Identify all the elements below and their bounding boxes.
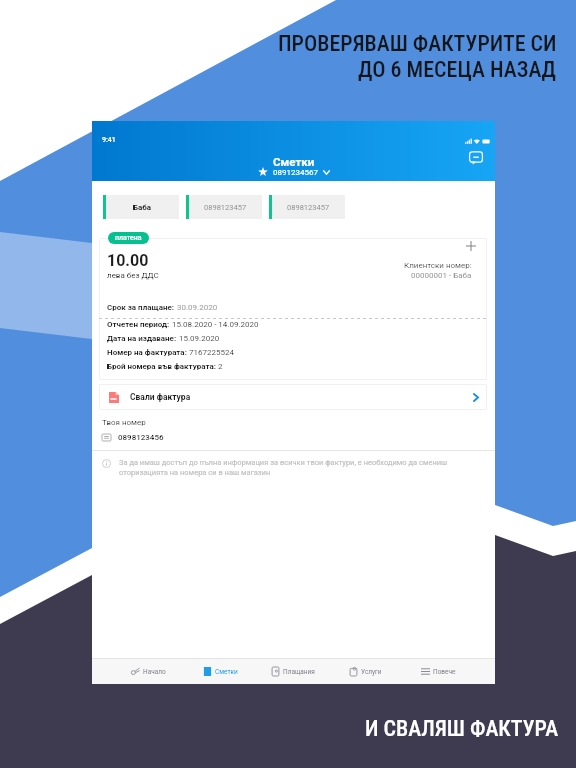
staticText: 15.09.2020: [179, 334, 220, 343]
staticText: Повече: [433, 668, 456, 676]
button[interactable]: платена: [108, 232, 149, 244]
button[interactable]: 0898123457: [186, 195, 262, 219]
staticText: И СВАЛЯШ ФАКТУРА: [365, 716, 559, 742]
staticText: Баба: [133, 203, 152, 212]
staticText: ПРОВЕРЯВАШ ФАКТУРИТЕ СИ: [278, 31, 557, 57]
staticText: ДО 6 МЕСЕЦА НАЗАД: [358, 57, 557, 83]
staticText: Срок за плащане:: [107, 303, 177, 312]
staticText: За да имаш достъп до пълна информация за…: [119, 458, 461, 477]
staticText: Брой номера във фактурата:: [107, 362, 218, 371]
staticText: Начало: [143, 668, 166, 676]
staticText: 0898123457: [287, 203, 330, 212]
staticText: 2: [218, 362, 223, 371]
staticText: Дата на издаване:: [107, 334, 179, 343]
staticText: 30.09.2020: [177, 303, 218, 312]
button[interactable]: Свали фактура: [99, 384, 487, 410]
staticText: 0898123456: [118, 433, 164, 442]
button[interactable]: Add: [463, 238, 479, 254]
staticText: 00000001 - Баба: [411, 271, 472, 280]
button[interactable]: Сметки: [184, 659, 256, 684]
button[interactable]: Плащания: [256, 659, 329, 684]
staticText: 7167225524: [189, 348, 234, 357]
staticText: Плащания: [283, 668, 315, 676]
staticText: Услуги: [361, 668, 382, 676]
button[interactable]: 0898123457: [269, 195, 345, 219]
staticText: 0891234567: [273, 168, 318, 177]
button[interactable]: Начало: [112, 659, 184, 684]
staticText: Свали фактура: [130, 392, 191, 402]
staticText: 15.08.2020 - 14.09.2020: [172, 320, 259, 329]
staticText: Клиентски номер:: [404, 261, 472, 270]
staticText: 0898123457: [204, 203, 247, 212]
staticText: платена: [115, 234, 142, 242]
staticText: лева без ДДС: [107, 271, 159, 280]
button[interactable]: Повече: [402, 659, 475, 684]
button[interactable]: Баба: [103, 195, 179, 219]
button[interactable]: Услуги: [329, 659, 402, 684]
staticText: Сметки: [215, 668, 238, 676]
staticText: 9:41: [102, 136, 116, 144]
staticText: Номер на фактурата:: [107, 348, 189, 357]
staticText: Сметки: [273, 155, 315, 168]
staticText: Твоя номер: [102, 418, 146, 427]
button[interactable]: [99, 238, 487, 380]
staticText: Отчетен период:: [107, 320, 172, 329]
staticText: 10.00: [107, 251, 149, 270]
button[interactable]: Chat: [465, 147, 487, 169]
